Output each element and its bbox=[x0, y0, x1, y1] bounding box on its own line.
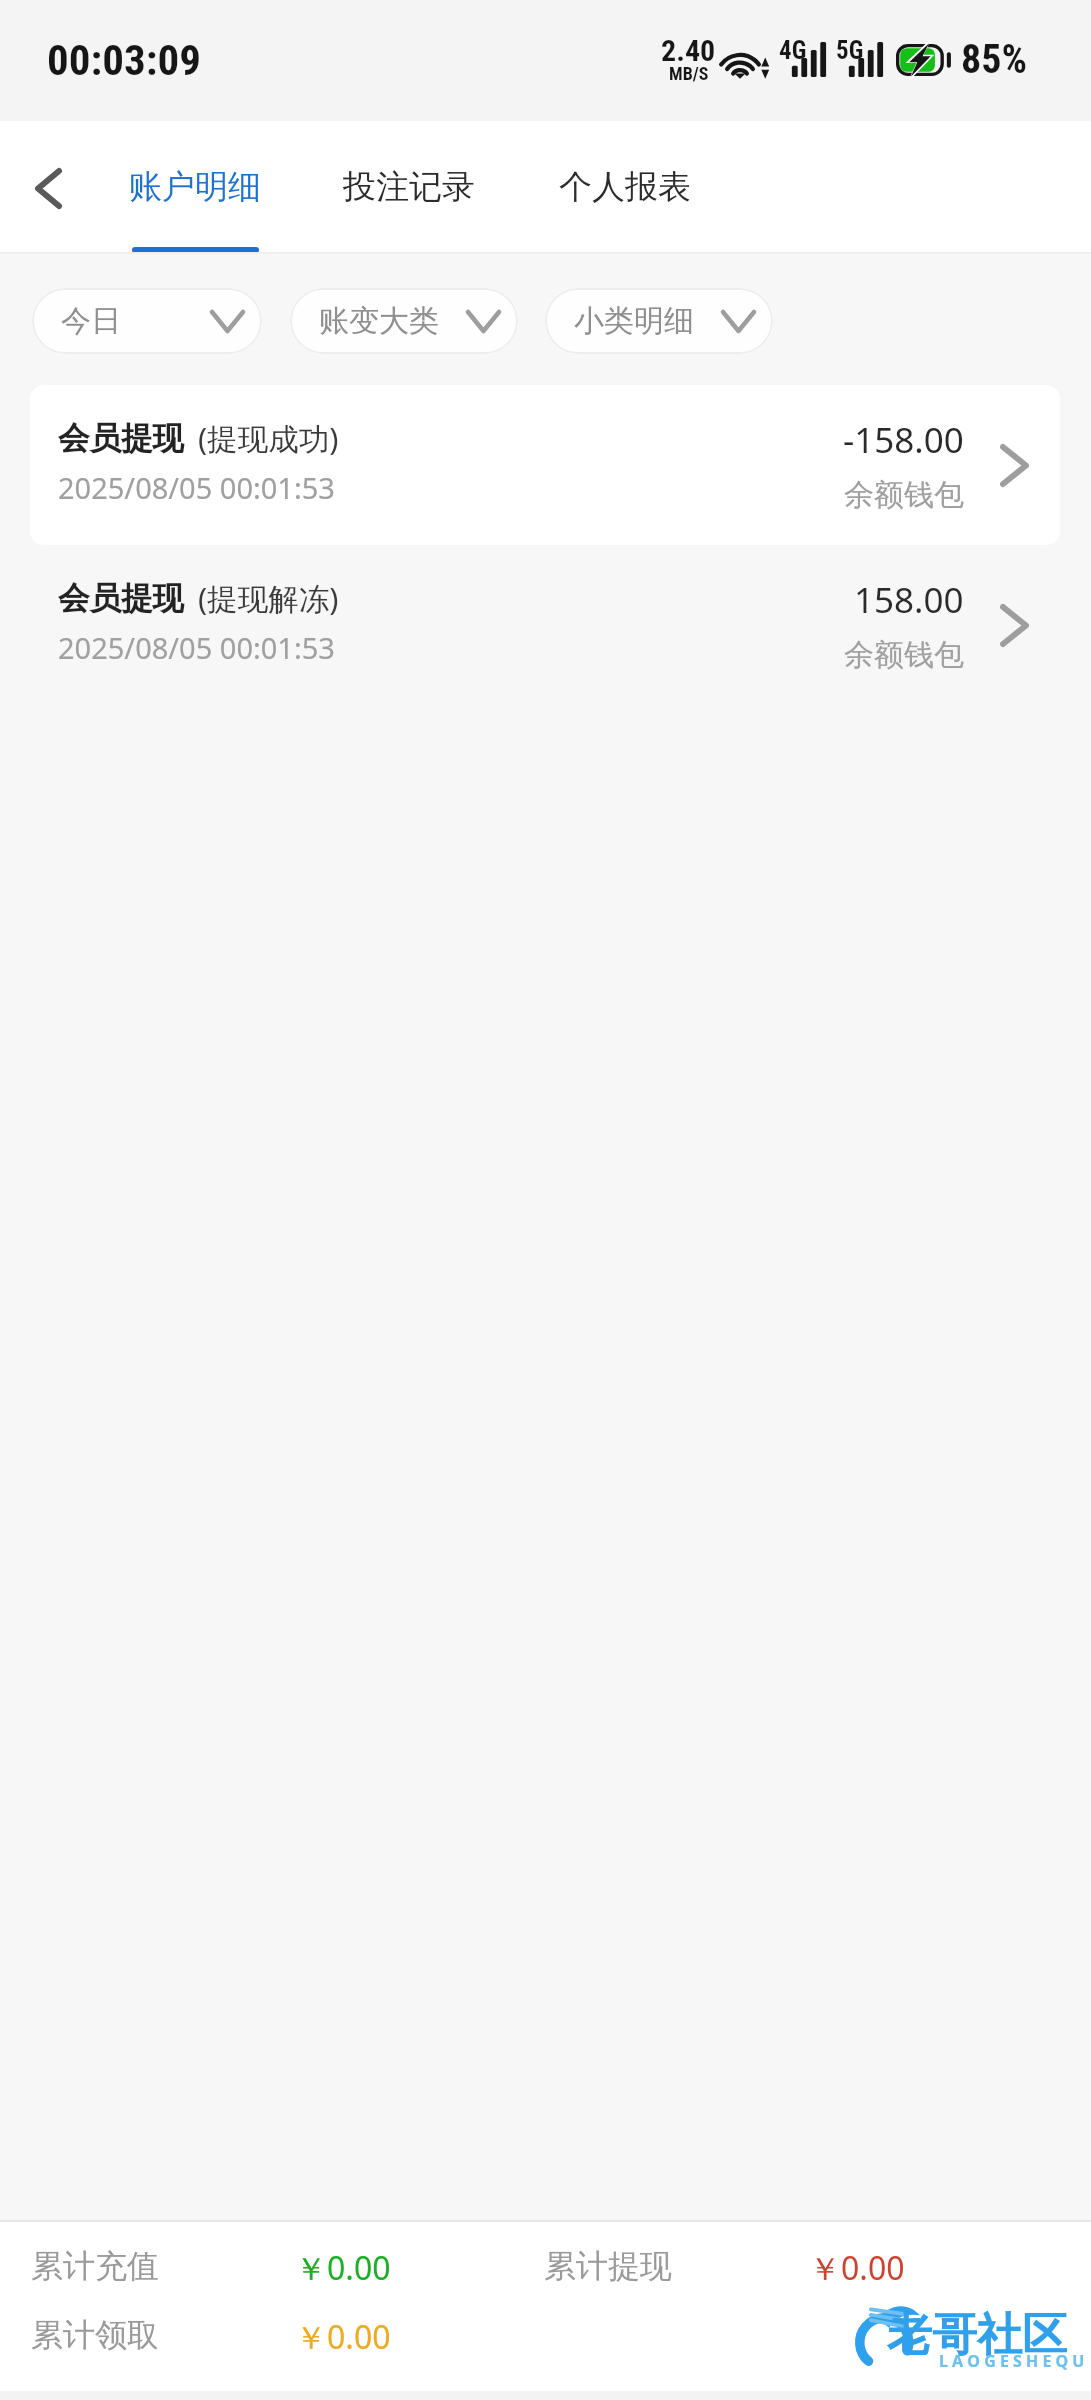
staticText: (提现成功) bbox=[198, 417, 339, 459]
staticText: ￥0.00 bbox=[809, 2246, 905, 2290]
staticText: 余额钱包 bbox=[844, 476, 964, 514]
staticText: 2025/08/05 00:01:53 bbox=[58, 468, 335, 507]
button[interactable]: 会员提现 bbox=[30, 545, 1060, 705]
staticText: 投注记录 bbox=[343, 166, 475, 208]
button[interactable]: 会员提现 bbox=[30, 385, 1060, 545]
staticText: 账户明细 bbox=[129, 166, 261, 208]
staticText: 累计领取 bbox=[31, 2315, 159, 2355]
staticText: 今日 bbox=[61, 302, 121, 340]
button[interactable]: 小类明细 bbox=[545, 288, 773, 354]
staticText: ￥0.00 bbox=[295, 2315, 391, 2359]
staticText: 会员提现 bbox=[58, 419, 184, 459]
button[interactable]: 投注记录 bbox=[328, 121, 490, 252]
staticText: 账变大类 bbox=[319, 302, 439, 340]
button[interactable]: Back bbox=[22, 162, 74, 215]
staticText: 老哥社区 bbox=[887, 2307, 1067, 2364]
staticText: 5G bbox=[836, 36, 864, 65]
staticText: 158.00 bbox=[854, 576, 964, 624]
staticText: 2.40 bbox=[661, 33, 716, 68]
button[interactable]: 账户明细 bbox=[114, 121, 276, 252]
button[interactable]: 账变大类 bbox=[290, 288, 518, 354]
staticText: 4G bbox=[779, 36, 807, 65]
staticText: 余额钱包 bbox=[844, 636, 964, 674]
staticText: 会员提现 bbox=[58, 579, 184, 619]
button[interactable]: 个人报表 bbox=[544, 121, 706, 252]
staticText: 00:03:09 bbox=[47, 35, 201, 85]
staticText: (提现解冻) bbox=[198, 577, 339, 619]
staticText: 累计提现 bbox=[544, 2246, 672, 2286]
button[interactable]: 今日 bbox=[32, 288, 262, 354]
staticText: L A O G E S H E Q U bbox=[939, 2350, 1085, 2372]
staticText: 85% bbox=[961, 36, 1027, 83]
staticText: 2025/08/05 00:01:53 bbox=[58, 628, 335, 667]
staticText: 累计充值 bbox=[31, 2246, 159, 2286]
staticText: MB/S bbox=[669, 63, 709, 84]
staticText: 小类明细 bbox=[574, 302, 694, 340]
staticText: 个人报表 bbox=[559, 166, 691, 208]
staticText: -158.00 bbox=[843, 416, 964, 464]
staticText: ￥0.00 bbox=[295, 2246, 391, 2290]
